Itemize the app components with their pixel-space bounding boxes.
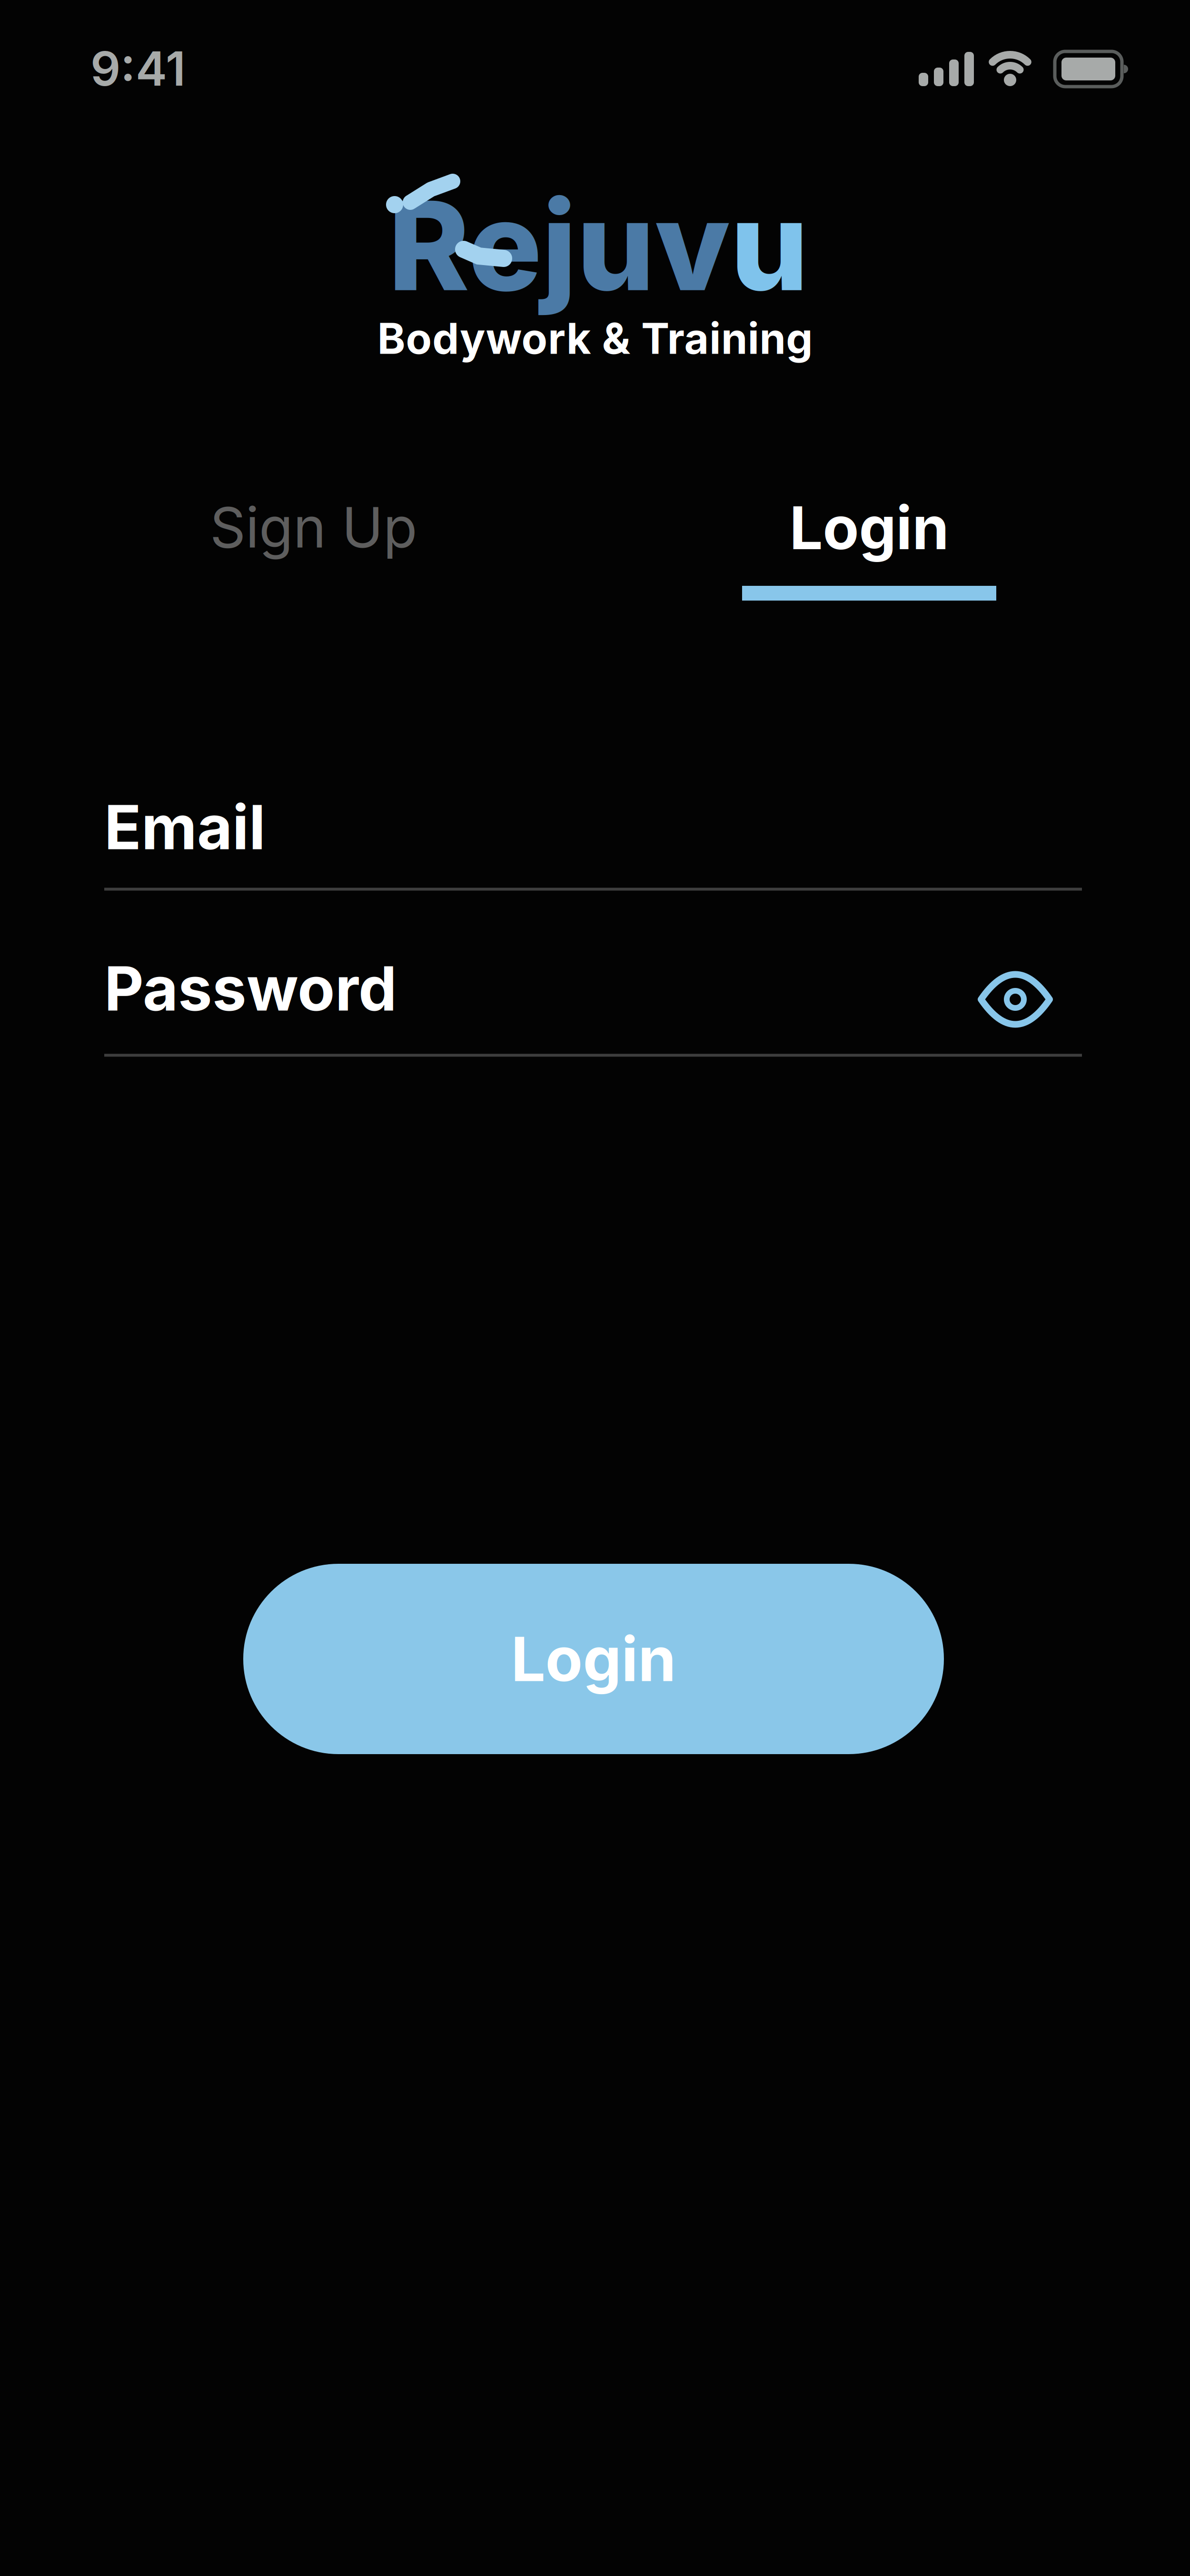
button[interactable]: Email	[104, 790, 1082, 891]
button[interactable]: Password	[104, 952, 1082, 1057]
button[interactable]: Show password	[963, 957, 1068, 1042]
staticText: Password	[104, 952, 397, 1025]
staticText: Login	[789, 492, 949, 563]
staticText: 9:41	[90, 40, 186, 97]
button[interactable]: Sign Up	[210, 494, 417, 561]
staticText: Login	[511, 1622, 676, 1696]
button[interactable]: Login	[243, 1564, 944, 1754]
staticText: Rejuv	[388, 171, 730, 320]
staticText: Sign Up	[210, 494, 417, 561]
staticText: Email	[104, 790, 266, 864]
staticText: u	[730, 171, 808, 320]
button[interactable]: Login	[742, 492, 996, 601]
staticText: Bodywork & Training	[377, 313, 813, 364]
